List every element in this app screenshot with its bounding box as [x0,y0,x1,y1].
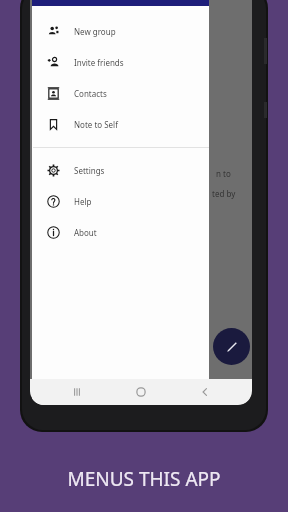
button[interactable]: Home [124,379,158,405]
button[interactable]: New group [32,16,209,47]
staticText: Contacts [74,88,107,99]
button[interactable]: Back [188,379,222,405]
staticText: Settings [74,165,105,176]
button[interactable]: Note to Self [32,109,209,140]
button[interactable]: Invite friends [32,47,209,78]
button[interactable]: Recent apps [60,379,94,405]
staticText: Note to Self [74,119,118,130]
staticText: MENUS THIS APP [0,466,288,492]
staticText: Invite friends [74,57,124,68]
button[interactable]: Help [32,186,209,217]
button[interactable]: About [32,217,209,248]
staticText: ted by [212,188,236,199]
staticText: New group [74,26,116,37]
staticText: About [74,227,97,238]
staticText: n to [216,168,231,179]
staticText: Help [74,196,92,207]
button[interactable]: Contacts [32,78,209,109]
button[interactable]: Settings [32,155,209,186]
button[interactable]: Compose message [213,328,250,365]
